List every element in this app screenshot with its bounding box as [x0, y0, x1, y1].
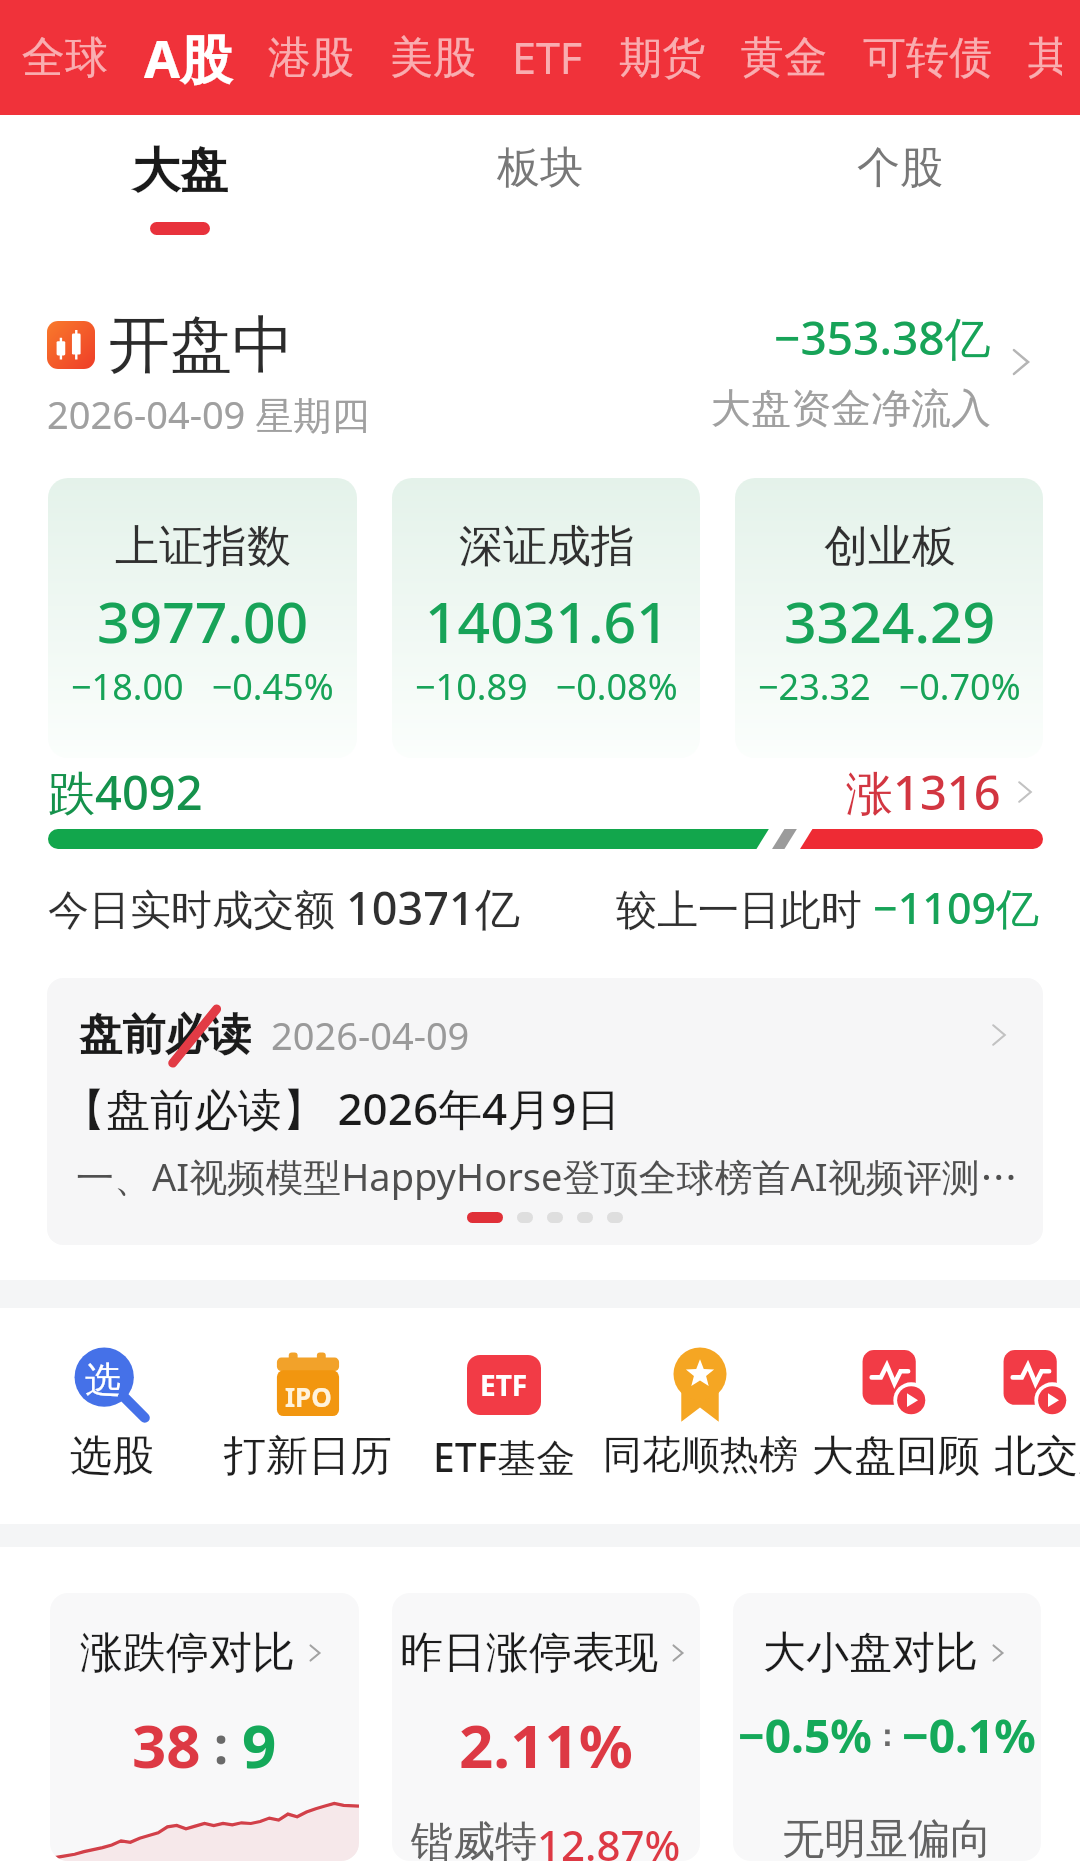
- staticText: 跌4092: [48, 760, 203, 824]
- staticText: 全球: [22, 31, 108, 85]
- button[interactable]: 其他: [1010, 0, 1080, 115]
- staticText: IPO: [285, 1379, 332, 1414]
- staticText: 今日实时成交额: [48, 880, 346, 936]
- staticText: 板块: [497, 141, 583, 195]
- staticText: 大小盘对比: [763, 1626, 978, 1680]
- button[interactable]: 美股: [372, 0, 494, 115]
- staticText: 上证指数: [115, 519, 291, 574]
- button[interactable]: 大盘回顾: [798, 1346, 994, 1483]
- button[interactable]: 北交所: [994, 1346, 1080, 1483]
- staticText: 涨1316: [846, 760, 1001, 824]
- other: 查看盘前必读: [981, 1017, 1017, 1053]
- staticText: 9: [242, 1704, 277, 1786]
- staticText: ETF: [480, 1366, 528, 1404]
- button[interactable]: 昨日涨停表现: [392, 1593, 700, 1861]
- staticText: 10371亿: [346, 877, 520, 938]
- staticText: A股: [144, 22, 232, 93]
- staticText: 选股: [70, 1430, 154, 1483]
- staticText: 【盘前必读】 2026年4月9日: [62, 1078, 621, 1138]
- button[interactable]: 大盘: [0, 115, 360, 273]
- button[interactable]: 上证指数: [48, 478, 357, 758]
- button[interactable]: 选: [14, 1346, 210, 1483]
- button[interactable]: 同花顺热榜: [602, 1346, 798, 1479]
- staticText: 无明显偏向: [782, 1813, 992, 1861]
- staticText: :: [201, 1711, 242, 1779]
- staticText: 大盘: [132, 141, 228, 201]
- staticText: −23.32 −0.70%: [758, 662, 1021, 711]
- staticText: 期货: [619, 31, 705, 85]
- staticText: 北交所: [994, 1430, 1080, 1483]
- staticText: 选: [85, 1357, 121, 1402]
- staticText: −0.1%: [902, 1704, 1036, 1767]
- staticText: 港股: [268, 31, 354, 85]
- button[interactable]: 期货: [601, 0, 723, 115]
- staticText: 大盘回顾: [812, 1430, 980, 1483]
- staticText: ETF基金: [433, 1430, 576, 1483]
- staticText: 黄金: [741, 31, 827, 85]
- staticText: 可转债: [863, 31, 992, 85]
- staticText: 较上一日此时: [616, 880, 873, 936]
- button[interactable]: ETF: [406, 1346, 602, 1483]
- button[interactable]: 板块: [360, 115, 720, 273]
- staticText: 盘前必读: [79, 1008, 251, 1062]
- button[interactable]: 大小盘对比: [733, 1593, 1041, 1861]
- staticText: −0.5%: [738, 1704, 872, 1767]
- staticText: 一、AI视频模型HappyHorse登顶全球榜首AI视频评测平台…: [76, 1150, 1023, 1202]
- button[interactable]: A股: [126, 0, 250, 115]
- staticText: 大盘资金净流入: [711, 383, 991, 433]
- staticText: 3324.29: [784, 582, 996, 660]
- staticText: −353.38亿: [774, 306, 991, 369]
- staticText: 涨跌停对比: [80, 1626, 295, 1680]
- staticText: 2026-04-09: [271, 1009, 470, 1061]
- button[interactable]: IPO: [210, 1346, 406, 1483]
- staticText: 开盘中: [108, 306, 294, 384]
- button[interactable]: 涨跌停对比: [50, 1593, 359, 1861]
- staticText: −10.89 −0.08%: [415, 662, 678, 711]
- staticText: 深证成指: [459, 519, 635, 574]
- button[interactable]: 涨跌家数详情: [1007, 774, 1043, 810]
- staticText: 38: [132, 1704, 201, 1786]
- button[interactable]: ETF: [494, 0, 601, 115]
- button[interactable]: 黄金: [723, 0, 845, 115]
- staticText: 创业板: [824, 519, 956, 574]
- staticText: −1109亿: [873, 878, 1040, 937]
- button[interactable]: 深证成指: [392, 478, 700, 758]
- staticText: 锴威特: [411, 1816, 537, 1861]
- staticText: 昨日涨停表现: [400, 1626, 658, 1680]
- button[interactable]: 个股: [720, 115, 1080, 273]
- staticText: ：: [872, 1717, 902, 1755]
- staticText: 同花顺热榜: [603, 1430, 798, 1479]
- staticText: 其他: [1028, 31, 1062, 85]
- button[interactable]: 可转债: [845, 0, 1010, 115]
- staticText: 美股: [390, 31, 476, 85]
- staticText: 12.87%: [537, 1816, 681, 1861]
- button[interactable]: 盘前必读: [47, 978, 1043, 1245]
- staticText: ETF: [512, 28, 583, 87]
- staticText: −18.00 −0.45%: [71, 662, 334, 711]
- button[interactable]: 全球: [4, 0, 126, 115]
- staticText: 2.11%: [459, 1704, 633, 1786]
- staticText: 个股: [857, 141, 943, 195]
- staticText: 14031.61: [425, 582, 669, 660]
- button[interactable]: 港股: [250, 0, 372, 115]
- staticText: 打新日历: [224, 1430, 392, 1483]
- button[interactable]: 创业板: [735, 478, 1043, 758]
- staticText: 3977.00: [97, 582, 309, 660]
- button[interactable]: 大盘资金净流入详情: [999, 340, 1043, 384]
- staticText: 2026-04-09 星期四: [47, 388, 370, 440]
